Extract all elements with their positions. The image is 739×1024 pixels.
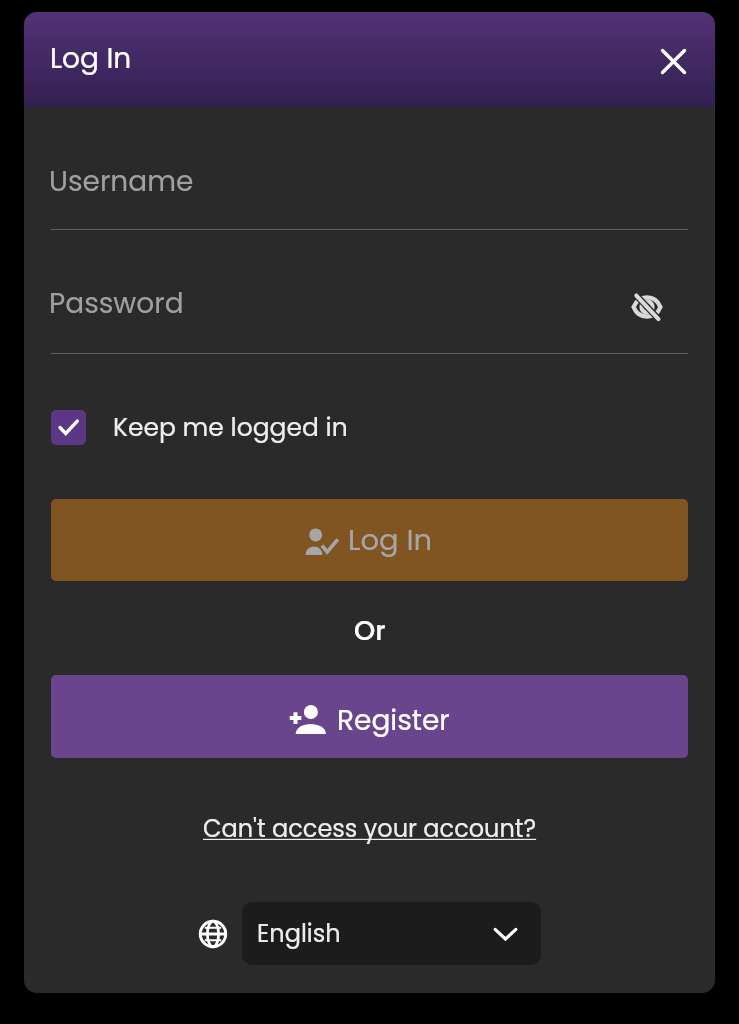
button[interactable]: Close <box>651 39 695 83</box>
button[interactable]: Register <box>51 675 688 758</box>
button[interactable]: Show password <box>625 285 669 329</box>
button[interactable]: English <box>242 902 541 965</box>
staticText: Keep me logged in <box>113 410 348 445</box>
button[interactable]: Language <box>192 914 232 954</box>
button[interactable]: Log In <box>51 499 688 581</box>
staticText: Username <box>49 162 194 201</box>
staticText: Log In <box>50 39 132 78</box>
staticText: English <box>257 917 497 951</box>
staticText: Register <box>337 701 450 740</box>
button[interactable]: Keep me logged in <box>51 403 348 451</box>
staticText: Can't access your account? <box>203 812 537 846</box>
button[interactable]: Username <box>49 144 686 206</box>
staticText: Password <box>49 284 644 323</box>
staticText: Or <box>354 612 386 650</box>
button[interactable]: Can't access your account? <box>197 808 543 850</box>
staticText: Log In <box>348 520 433 561</box>
